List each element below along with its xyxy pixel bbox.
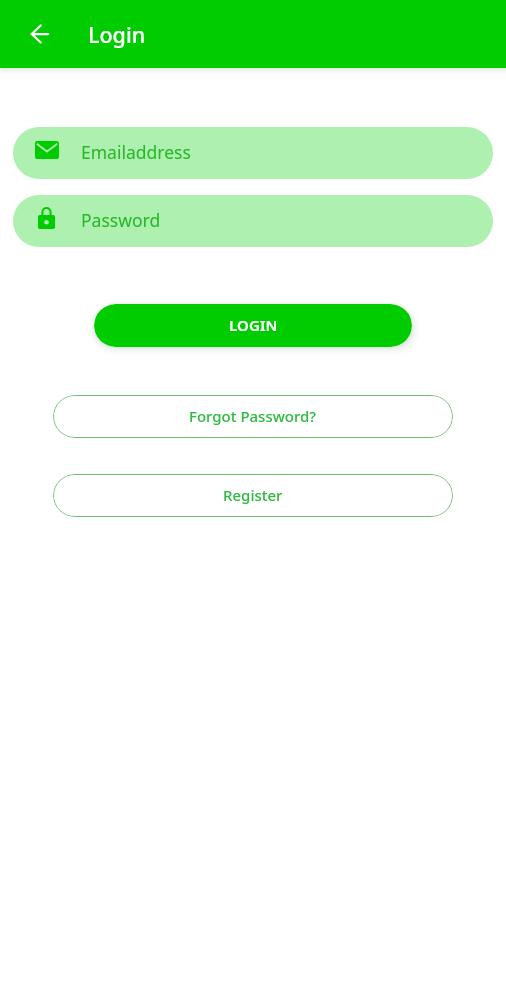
button[interactable]: LOGIN bbox=[94, 304, 412, 347]
staticText: Login bbox=[88, 20, 146, 49]
staticText: Forgot Password? bbox=[189, 406, 317, 426]
button[interactable]: Forgot Password? bbox=[53, 395, 453, 438]
staticText: LOGIN bbox=[229, 315, 278, 335]
button[interactable]: Back bbox=[16, 10, 64, 58]
staticText: Emailaddress bbox=[81, 140, 191, 164]
staticText: Password bbox=[81, 208, 161, 232]
button[interactable]: Password bbox=[13, 195, 493, 247]
button[interactable]: Register bbox=[53, 474, 453, 517]
button[interactable]: Emailaddress bbox=[13, 127, 493, 179]
staticText: Register bbox=[223, 485, 283, 505]
